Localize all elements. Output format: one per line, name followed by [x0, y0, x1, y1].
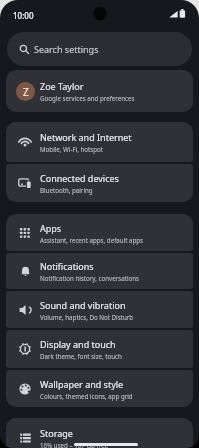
staticText: Notification history, conversations	[40, 274, 140, 282]
staticText: Sound and vibration	[40, 299, 126, 311]
staticText: 10:00	[13, 10, 34, 21]
staticText: Assistant, recent apps, default apps	[40, 236, 144, 244]
staticText: Volume, haptics, Do Not Disturb	[40, 313, 134, 321]
staticText: 16% used – 107 GB free	[40, 441, 109, 448]
button[interactable]: Display and touch	[6, 330, 193, 368]
staticText: Apps	[40, 222, 62, 234]
button[interactable]: Search settings	[7, 32, 192, 66]
staticText: Notifications	[40, 260, 94, 272]
staticText: Zoe Taylor	[40, 80, 84, 92]
staticText: Display and touch	[40, 338, 116, 350]
button[interactable]: Apps	[6, 214, 193, 251]
button[interactable]: Sound and vibration	[6, 291, 193, 328]
staticText: Dark theme, font size, touch	[40, 352, 122, 360]
staticText: Storage	[40, 427, 73, 439]
staticText: Connected devices	[40, 172, 119, 184]
button[interactable]: Wallpaper and style	[6, 370, 193, 407]
staticText: Network and Internet	[40, 131, 132, 143]
button[interactable]: Z	[6, 70, 193, 112]
button[interactable]: Network and Internet	[6, 122, 193, 162]
staticText: Z	[23, 85, 29, 99]
staticText: Wallpaper and style	[40, 378, 124, 390]
staticText: Mobile, Wi-Fi, hotspot	[40, 145, 104, 153]
staticText: Google services and preferences	[40, 94, 135, 102]
staticText: Bluetooth, pairing	[40, 186, 93, 194]
button[interactable]: Notifications	[6, 253, 193, 289]
staticText: Search settings	[34, 43, 99, 55]
button[interactable]: Connected devices	[6, 164, 193, 202]
button[interactable]: Storage	[6, 418, 193, 448]
staticText: Colours, themed icons, app grid	[40, 392, 133, 400]
